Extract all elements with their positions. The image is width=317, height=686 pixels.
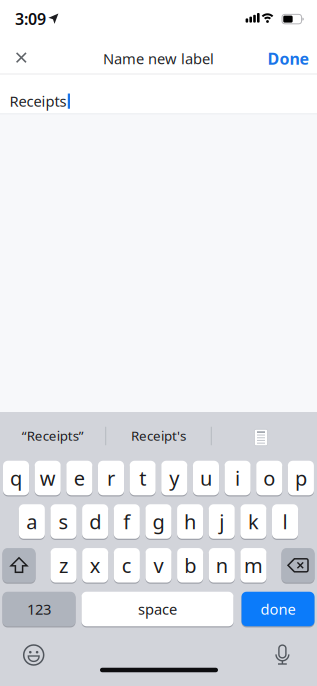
button[interactable]: b — [177, 548, 203, 582]
button[interactable]: e — [66, 461, 92, 495]
staticText: r — [107, 465, 115, 491]
button[interactable]: q — [3, 461, 29, 495]
staticText: u — [200, 465, 212, 491]
button[interactable]: w — [35, 461, 61, 495]
staticText: d — [89, 508, 101, 535]
button[interactable]: f — [114, 504, 140, 539]
staticText: q — [10, 465, 22, 491]
button[interactable]: r — [98, 461, 124, 495]
staticText: s — [58, 508, 68, 535]
button[interactable]: o — [256, 461, 282, 495]
button[interactable]: s — [50, 504, 77, 539]
staticText: p — [295, 465, 307, 491]
button[interactable]: p — [288, 461, 314, 495]
button[interactable]: v — [145, 548, 171, 582]
staticText: g — [152, 508, 164, 535]
staticText: a — [26, 508, 37, 535]
staticText: b — [184, 552, 196, 579]
button[interactable]: Numbers — [2, 592, 75, 626]
staticText: n — [216, 552, 228, 579]
staticText: x — [90, 552, 101, 579]
staticText: k — [248, 508, 259, 535]
button[interactable]: h — [177, 504, 203, 539]
button[interactable]: space — [81, 592, 233, 626]
button[interactable]: d — [82, 504, 108, 539]
button[interactable]: j — [209, 504, 235, 539]
button[interactable]: a — [19, 504, 45, 539]
staticText: z — [59, 552, 68, 579]
staticText: l — [283, 508, 288, 535]
staticText: “Receipts” — [22, 427, 84, 444]
staticText: Receipts — [10, 91, 67, 111]
button[interactable]: i — [224, 461, 251, 495]
staticText: e — [74, 465, 85, 491]
button[interactable]: Dictate — [265, 638, 299, 672]
staticText: 3:09 — [15, 8, 46, 29]
staticText: y — [169, 465, 179, 491]
button[interactable]: m — [240, 548, 266, 582]
staticText: f — [123, 508, 130, 535]
staticText: h — [184, 508, 196, 535]
button[interactable]: k — [240, 504, 266, 539]
staticText: w — [40, 465, 56, 491]
button[interactable]: z — [50, 548, 77, 582]
button[interactable]: Receipt's — [108, 415, 208, 455]
staticText: v — [153, 552, 163, 579]
button[interactable]: “Receipts” — [3, 415, 103, 455]
staticText: space — [138, 599, 177, 619]
staticText: i — [235, 465, 240, 491]
button[interactable]: l — [272, 504, 298, 539]
button[interactable]: Emoji — [17, 638, 51, 672]
button[interactable]: Close — [4, 41, 38, 75]
button[interactable]: Delete — [281, 548, 314, 582]
staticText: o — [263, 465, 275, 491]
button[interactable]: c — [114, 548, 140, 582]
button[interactable]: done — [241, 592, 314, 626]
staticText: Done — [267, 48, 309, 69]
button[interactable]: x — [82, 548, 108, 582]
button[interactable]: Receipt image suggestion — [211, 417, 311, 457]
button[interactable]: Shift — [2, 548, 35, 582]
staticText: j — [219, 508, 224, 535]
staticText: m — [244, 552, 263, 579]
button[interactable]: u — [193, 461, 219, 495]
staticText: 123 — [27, 599, 51, 619]
staticText: Receipt's — [131, 427, 186, 444]
button[interactable]: n — [209, 548, 235, 582]
staticText: t — [139, 465, 146, 491]
button[interactable]: y — [161, 461, 187, 495]
button[interactable]: g — [145, 504, 171, 539]
staticText: c — [122, 552, 132, 579]
staticText: Name new label — [103, 49, 214, 68]
staticText: done — [260, 599, 295, 619]
button[interactable]: t — [130, 461, 156, 495]
button[interactable]: Done — [257, 42, 317, 76]
